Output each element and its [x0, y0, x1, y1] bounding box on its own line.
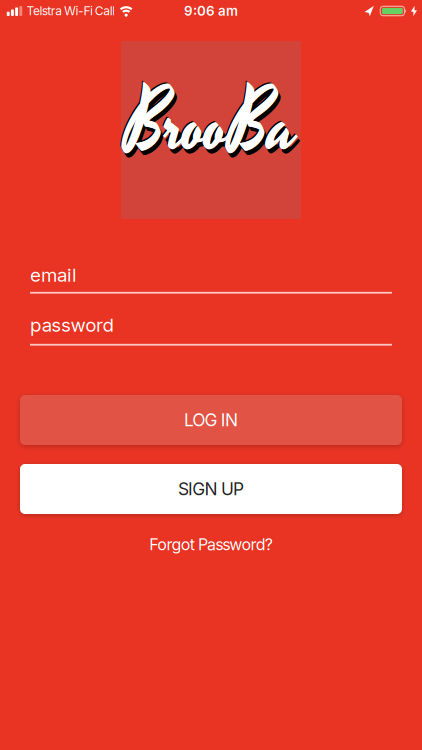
button[interactable]: password	[30, 314, 392, 346]
button[interactable]: Forgot Password?	[149, 535, 273, 554]
staticText: Telstra Wi-Fi Call	[26, 4, 115, 18]
staticText: BrooBa	[104, 67, 324, 192]
staticText: password	[30, 314, 114, 336]
staticText: 9:06 am	[184, 3, 238, 19]
button[interactable]: SIGN UP	[20, 464, 402, 514]
button[interactable]: email	[30, 264, 392, 294]
staticText: BrooBa	[100, 62, 320, 187]
button[interactable]: LOG IN	[20, 395, 402, 445]
staticText: BrooBa	[101, 63, 321, 188]
staticText: LOG IN	[184, 410, 238, 430]
staticText: Forgot Password?	[149, 535, 273, 554]
staticText: BrooBa	[105, 67, 325, 192]
staticText: email	[30, 264, 77, 286]
staticText: BrooBa	[102, 63, 322, 188]
staticText: SIGN UP	[178, 479, 244, 499]
